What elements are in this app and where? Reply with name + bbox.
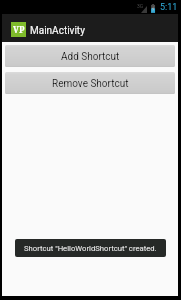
staticText: MainActivity xyxy=(30,25,85,37)
button[interactable]: Add Shortcut xyxy=(5,45,175,67)
button[interactable]: VP xyxy=(7,14,92,42)
button[interactable]: Remove Shortcut xyxy=(5,72,175,94)
other: Battery charging xyxy=(150,4,156,13)
staticText: 3G xyxy=(137,3,144,9)
staticText: Shortcut "HelloWorldShortcut" created. xyxy=(24,244,157,253)
staticText: Add Shortcut xyxy=(61,51,120,63)
staticText: Remove Shortcut xyxy=(52,78,129,90)
staticText: VP xyxy=(13,24,25,36)
staticText: 5:11 xyxy=(160,2,178,13)
other: Mobile signal xyxy=(141,6,147,13)
